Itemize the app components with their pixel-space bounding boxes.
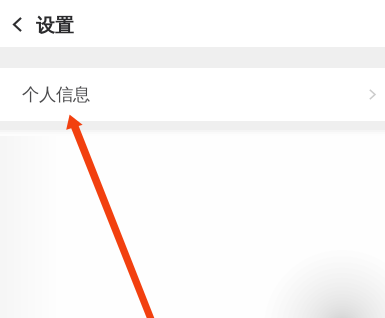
staticText: 个人信息 — [22, 84, 90, 105]
button[interactable]: Back — [0, 0, 35, 47]
staticText: 设置 — [36, 14, 74, 37]
button[interactable]: 个人信息 — [0, 68, 385, 121]
